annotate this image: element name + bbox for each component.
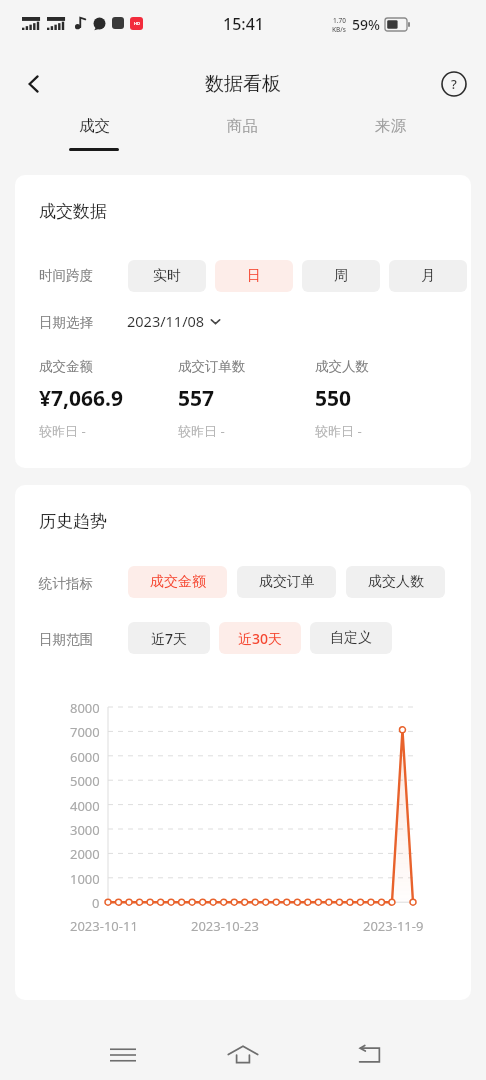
staticText: 557 xyxy=(178,384,215,413)
staticText: 历史趋势 xyxy=(39,511,107,532)
button[interactable]: 月 xyxy=(389,260,467,292)
staticText: 较昨日 - xyxy=(315,422,362,440)
staticText: 实时 xyxy=(153,267,181,285)
staticText: 成交 xyxy=(79,116,110,136)
staticText: 成交人数 xyxy=(315,358,369,375)
staticText: 日期选择 xyxy=(39,314,93,331)
staticText: HD xyxy=(134,21,140,26)
button[interactable]: Home xyxy=(218,1030,268,1080)
staticText: 3000 xyxy=(70,821,100,839)
staticText: ¥7,066.9 xyxy=(39,384,123,413)
staticText: 日期范围 xyxy=(39,631,93,648)
staticText: 5000 xyxy=(70,772,100,790)
button[interactable]: 日 xyxy=(215,260,293,292)
staticText: 2023-11-9 xyxy=(363,917,424,935)
staticText: 550 xyxy=(315,384,352,413)
button[interactable]: 成交订单 xyxy=(237,566,336,598)
staticText: 59% xyxy=(352,15,380,34)
staticText: 4000 xyxy=(70,797,100,815)
staticText: 1000 xyxy=(70,870,100,888)
staticText: 来源 xyxy=(375,116,406,136)
staticText: 2023/11/08 xyxy=(127,311,205,331)
staticText: 7000 xyxy=(70,723,100,741)
staticText: 较昨日 - xyxy=(178,422,225,440)
button[interactable]: 商品 xyxy=(192,112,292,162)
staticText: 商品 xyxy=(227,116,258,136)
button[interactable]: 周 xyxy=(302,260,380,292)
button[interactable]: 自定义 xyxy=(310,622,392,654)
staticText: 数据看板 xyxy=(205,72,281,96)
staticText: 月 xyxy=(421,267,435,285)
staticText: 时间跨度 xyxy=(39,267,93,284)
button[interactable]: Recent apps xyxy=(98,1030,148,1080)
staticText: KB/s xyxy=(332,25,347,34)
staticText: 近30天 xyxy=(238,629,283,648)
button[interactable]: Back xyxy=(8,58,60,110)
staticText: 2023-10-23 xyxy=(191,917,259,935)
staticText: 8000 xyxy=(70,699,100,717)
staticText: 自定义 xyxy=(330,629,372,647)
button[interactable]: 近30天 xyxy=(219,622,301,654)
staticText: 成交订单数 xyxy=(178,358,246,375)
button[interactable]: Help xyxy=(430,60,478,108)
staticText: 成交人数 xyxy=(368,573,424,591)
staticText: 2000 xyxy=(70,845,100,863)
staticText: 近7天 xyxy=(151,629,188,648)
staticText: ? xyxy=(451,75,457,93)
staticText: 0 xyxy=(92,894,100,912)
staticText: 2023-10-11 xyxy=(70,917,138,935)
staticText: 周 xyxy=(334,267,348,285)
button[interactable]: 来源 xyxy=(340,112,440,162)
staticText: 日 xyxy=(247,267,261,285)
staticText: 15:41 xyxy=(223,13,264,35)
button[interactable]: 成交金额 xyxy=(128,566,227,598)
button[interactable]: Back xyxy=(345,1030,395,1080)
button[interactable]: 2023/11/08 xyxy=(127,311,221,331)
button[interactable]: 成交 xyxy=(44,112,144,162)
staticText: 较昨日 - xyxy=(39,422,86,440)
button[interactable]: 实时 xyxy=(128,260,206,292)
staticText: 6000 xyxy=(70,748,100,766)
staticText: 1.70 xyxy=(333,16,346,25)
staticText: 成交金额 xyxy=(39,358,93,375)
button[interactable]: 近7天 xyxy=(128,622,210,654)
staticText: 成交订单 xyxy=(259,573,315,591)
button[interactable]: 成交人数 xyxy=(346,566,445,598)
staticText: 成交金额 xyxy=(150,573,206,591)
staticText: 统计指标 xyxy=(39,575,93,592)
staticText: 成交数据 xyxy=(39,201,107,222)
